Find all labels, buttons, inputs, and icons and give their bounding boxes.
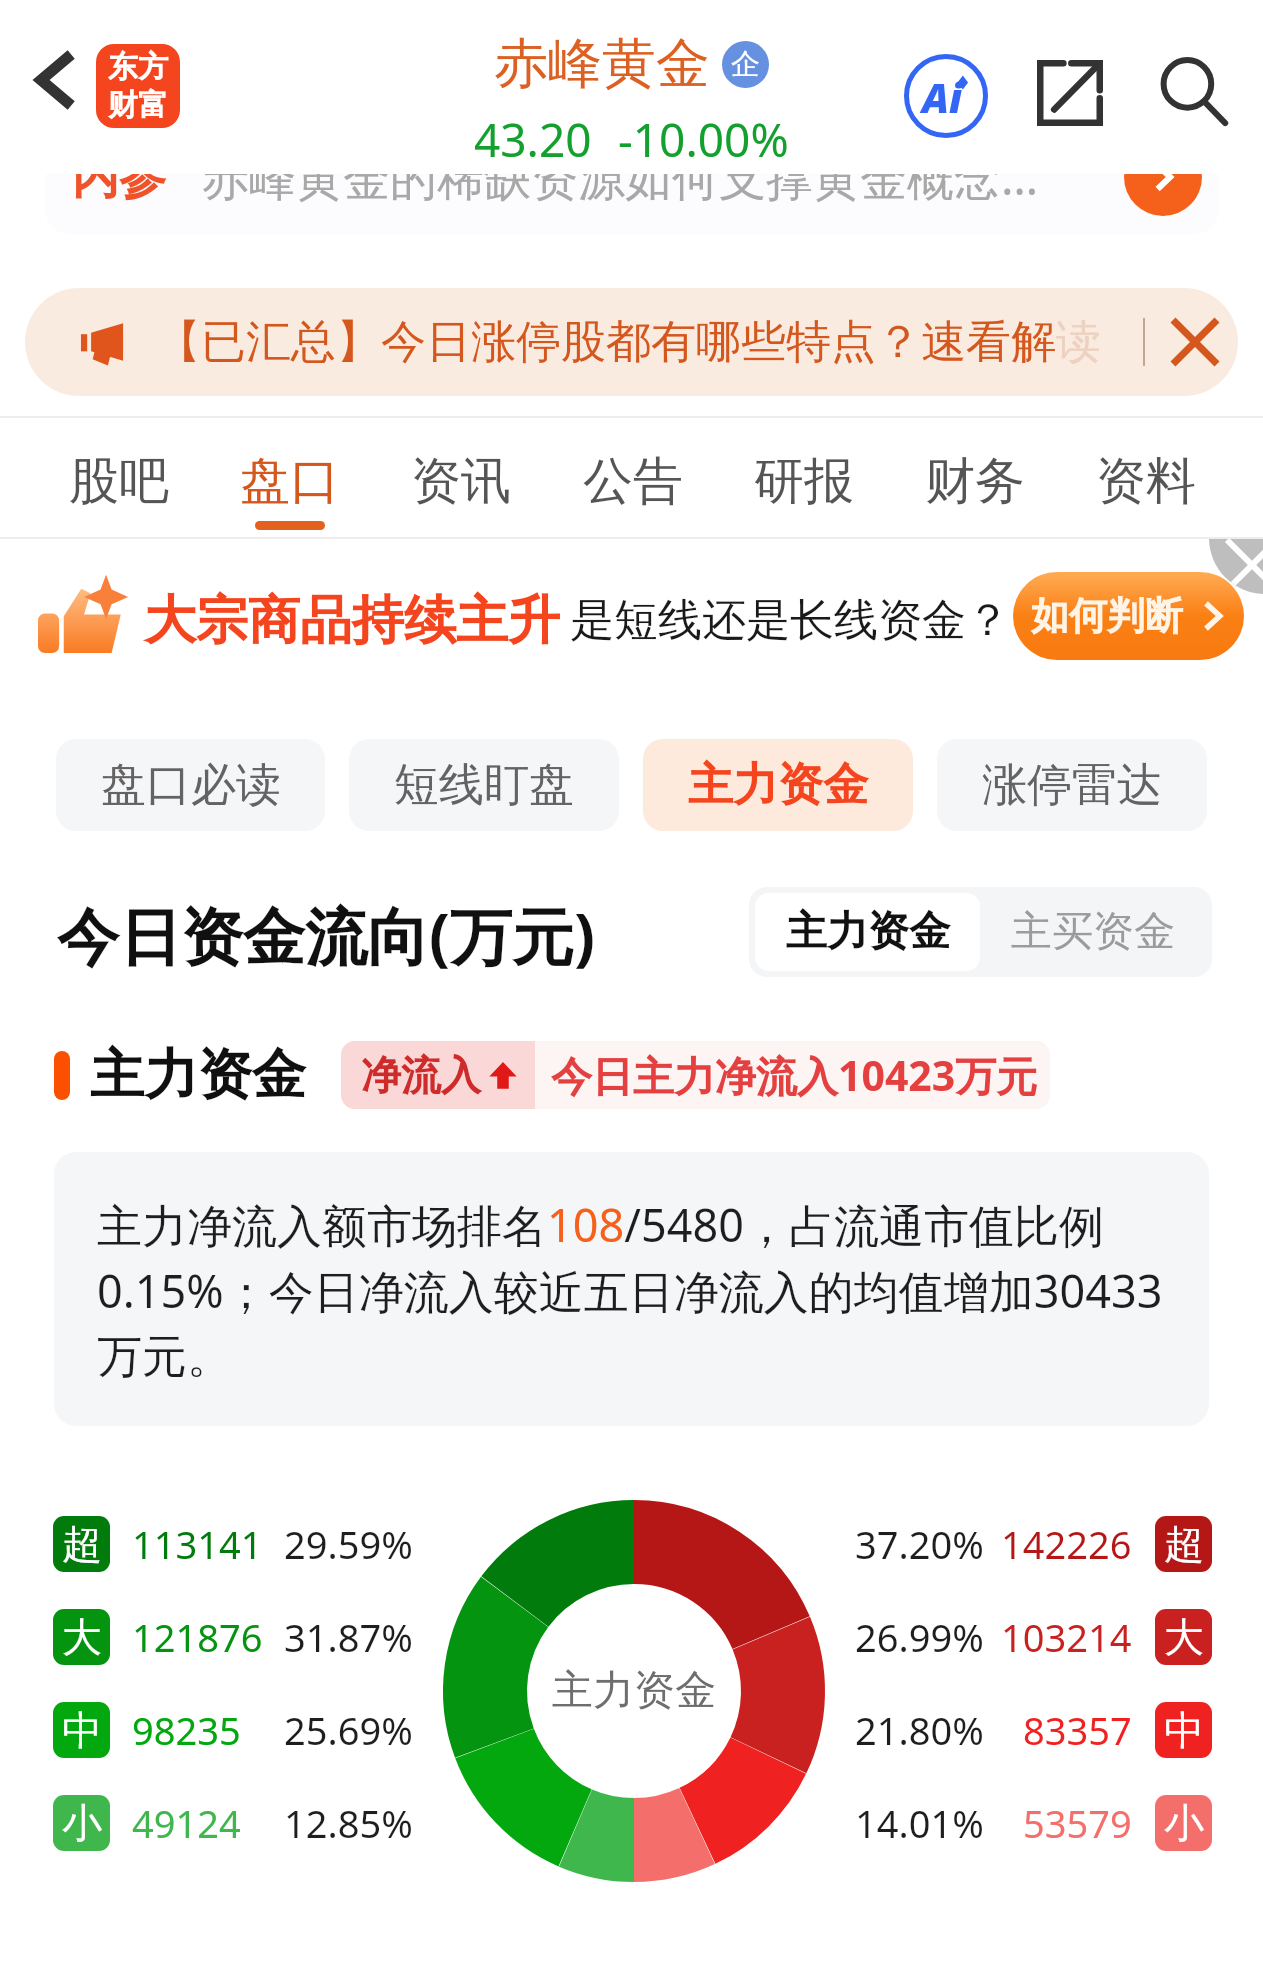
button[interactable]: 大 xyxy=(53,1609,413,1665)
staticText: 大 xyxy=(1164,1612,1204,1662)
staticText: 盘口必读 xyxy=(101,757,281,814)
button[interactable]: Share xyxy=(1025,48,1115,138)
button[interactable]: 财务 xyxy=(890,416,1060,539)
staticText: 113141 xyxy=(132,1518,263,1570)
button[interactable]: 内参 xyxy=(46,116,1218,234)
staticText: 东方 xyxy=(108,48,168,86)
staticText: 今日资金流向(万元) xyxy=(57,893,596,978)
button[interactable]: 资料 xyxy=(1061,416,1231,539)
staticText: 103214 xyxy=(1001,1611,1132,1663)
staticText: 26.99% xyxy=(855,1611,984,1663)
button[interactable]: Close notice xyxy=(1155,302,1235,382)
staticText: 主力净流入额市场排名108/5480，占流通市值比例0.15%；今日净流入较近五… xyxy=(97,1194,1172,1385)
staticText: 主力资金 xyxy=(688,757,868,814)
staticText: 小 xyxy=(1164,1798,1204,1848)
staticText: 研报 xyxy=(754,450,854,513)
staticText: 49124 xyxy=(132,1797,241,1849)
staticText: 盘口 xyxy=(240,450,340,513)
staticText: 内参 xyxy=(72,148,166,207)
button[interactable]: 26.99% xyxy=(855,1609,1212,1665)
button[interactable]: 涨停雷达 xyxy=(937,739,1207,831)
staticText: 如何判断 xyxy=(1031,592,1183,640)
staticText: 超 xyxy=(1164,1519,1204,1569)
staticText: 财富 xyxy=(108,86,168,124)
staticText: 超 xyxy=(62,1519,102,1569)
staticText: 98235 xyxy=(132,1704,241,1756)
staticText: 主力资金 xyxy=(90,1041,306,1109)
button[interactable]: Back xyxy=(8,34,100,126)
staticText: 主买资金 xyxy=(1011,906,1175,958)
button[interactable]: 14.01% xyxy=(855,1795,1212,1851)
button[interactable]: 短线盯盘 xyxy=(349,739,619,831)
button[interactable]: Close advertisement xyxy=(1209,539,1263,594)
staticText: 37.20% xyxy=(855,1518,984,1570)
staticText: 赤峰黄金 xyxy=(494,30,710,98)
staticText: 财务 xyxy=(925,450,1025,513)
button[interactable]: 主力资金 xyxy=(755,893,980,971)
staticText: 53579 xyxy=(1023,1797,1132,1849)
staticText: 大 xyxy=(62,1612,102,1662)
button[interactable]: 【已汇总】今日涨停股都有哪些特点？速看解读 xyxy=(25,288,1238,396)
staticText: 29.59% xyxy=(284,1518,413,1570)
staticText: 【已汇总】今日涨停股都有哪些特点？速看解读 xyxy=(156,314,1101,371)
button[interactable]: 中 xyxy=(53,1702,413,1758)
staticText: Ai xyxy=(922,70,963,124)
staticText: 资料 xyxy=(1096,450,1196,513)
staticText: 赤峰黄金的稀缺资源如何支撑黄金概念… xyxy=(202,145,1039,209)
staticText: 大宗商品持续主升 xyxy=(144,588,560,654)
button[interactable]: 盘口 xyxy=(205,416,375,539)
staticText: 净流入 xyxy=(361,1050,481,1100)
button[interactable]: 资讯 xyxy=(376,416,546,539)
staticText: 公告 xyxy=(583,450,683,513)
staticText: 小 xyxy=(62,1798,102,1848)
button[interactable]: 大宗商品持续主升 xyxy=(0,539,1263,699)
staticText: 主力资金 xyxy=(786,906,950,958)
staticText: 中 xyxy=(1164,1705,1204,1755)
button[interactable]: AI assistant xyxy=(898,48,994,144)
staticText: 今日主力净流入10423万元 xyxy=(551,1047,1038,1103)
button[interactable]: 21.80% xyxy=(855,1702,1212,1758)
staticText: 是短线还是长线资金？ xyxy=(570,593,1010,648)
staticText: 14.01% xyxy=(855,1797,984,1849)
staticText: 25.69% xyxy=(284,1704,413,1756)
staticText: 31.87% xyxy=(284,1611,413,1663)
button[interactable]: 超 xyxy=(53,1516,413,1572)
button[interactable]: 37.20% xyxy=(855,1516,1212,1572)
button[interactable]: East Money home xyxy=(96,44,180,128)
staticText: 21.80% xyxy=(855,1704,984,1756)
button[interactable]: 如何判断 xyxy=(1013,572,1244,660)
button[interactable]: 公告 xyxy=(548,416,718,539)
staticText: 短线盯盘 xyxy=(394,757,574,814)
staticText: 企 xyxy=(731,46,760,83)
staticText: 主力资金 xyxy=(552,1665,716,1717)
button[interactable]: 主力资金 xyxy=(643,739,913,831)
button[interactable]: Search xyxy=(1148,48,1238,138)
staticText: 43.20 xyxy=(474,108,592,171)
button[interactable]: 主买资金 xyxy=(980,893,1206,971)
button[interactable]: 研报 xyxy=(719,416,889,539)
staticText: 121876 xyxy=(132,1611,263,1663)
staticText: 涨停雷达 xyxy=(982,757,1162,814)
staticText: 12.85% xyxy=(284,1797,413,1849)
staticText: 股吧 xyxy=(69,450,169,513)
staticText: 142226 xyxy=(1001,1518,1132,1570)
button[interactable]: 股吧 xyxy=(34,416,204,539)
staticText: 83357 xyxy=(1023,1704,1132,1756)
staticText: 中 xyxy=(62,1705,102,1755)
staticText: -10.00% xyxy=(618,108,789,171)
staticText: 资讯 xyxy=(411,450,511,513)
button[interactable]: 盘口必读 xyxy=(56,739,325,831)
button[interactable]: 小 xyxy=(53,1795,413,1851)
